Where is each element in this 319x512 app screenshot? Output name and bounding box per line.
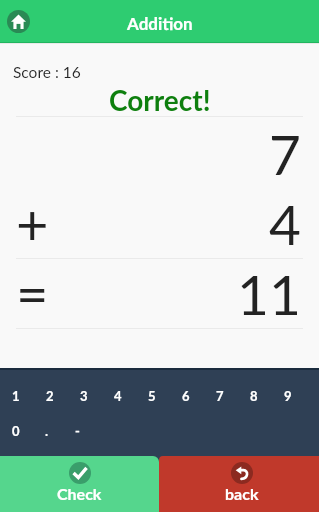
staticText: 2 — [46, 388, 54, 404]
button[interactable]: 5 — [135, 385, 169, 407]
staticText: 7 — [216, 388, 224, 404]
staticText: Addition — [127, 13, 193, 33]
button[interactable]: 7 — [203, 385, 237, 407]
button[interactable]: back — [159, 456, 319, 512]
staticText: 4 — [114, 388, 122, 404]
button[interactable]: 8 — [237, 385, 271, 407]
staticText: = — [16, 259, 49, 319]
button[interactable]: Home — [7, 10, 30, 33]
staticText: 6 — [182, 388, 190, 404]
staticText: 8 — [250, 388, 258, 404]
staticText: back — [225, 484, 259, 503]
staticText: . — [45, 423, 49, 439]
button[interactable]: Check — [0, 456, 159, 512]
button[interactable]: 0 — [0, 420, 31, 442]
button[interactable]: . — [31, 420, 62, 442]
button[interactable]: - — [62, 420, 93, 442]
button[interactable]: 3 — [67, 385, 101, 407]
button[interactable]: 1 — [0, 385, 33, 407]
button[interactable]: 6 — [169, 385, 203, 407]
staticText: Correct! — [109, 83, 211, 117]
staticText: - — [75, 423, 80, 439]
staticText: 4 — [269, 191, 301, 257]
staticText: 11 — [237, 261, 301, 327]
staticText: Score : 16 — [13, 63, 81, 82]
button[interactable]: 9 — [271, 385, 305, 407]
staticText: + — [16, 190, 49, 250]
staticText: 0 — [12, 423, 20, 439]
button[interactable]: 4 — [101, 385, 135, 407]
staticText: 7 — [269, 121, 301, 187]
staticText: 9 — [284, 388, 292, 404]
staticText: 5 — [148, 388, 156, 404]
staticText: Check — [57, 484, 102, 503]
staticText: 3 — [80, 388, 88, 404]
button[interactable]: 2 — [33, 385, 67, 407]
staticText: 1 — [12, 388, 20, 404]
